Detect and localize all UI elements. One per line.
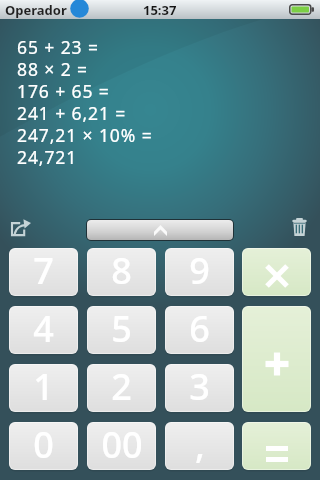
button[interactable]: 00: [87, 422, 156, 470]
button[interactable]: Equals: [242, 422, 311, 470]
staticText: 24,721: [17, 145, 78, 167]
staticText: 4: [33, 306, 54, 352]
staticText: 8: [111, 248, 132, 294]
button[interactable]: 8: [87, 248, 156, 296]
staticText: 247,21 × 10% =: [17, 123, 153, 145]
staticText: 15:37: [143, 1, 177, 19]
staticText: 00: [101, 422, 143, 468]
button[interactable]: ,: [165, 422, 234, 470]
staticText: Operador: [5, 1, 67, 19]
staticText: 1: [33, 364, 54, 410]
staticText: 0: [33, 422, 54, 468]
button[interactable]: Multiply: [242, 248, 311, 296]
button[interactable]: 5: [87, 306, 156, 354]
button[interactable]: 7: [9, 248, 78, 296]
staticText: ,: [195, 422, 205, 468]
staticText: 65 + 23 =: [17, 35, 99, 57]
button[interactable]: Clear: [283, 213, 315, 241]
button[interactable]: 4: [9, 306, 78, 354]
button[interactable]: 3: [165, 364, 234, 412]
staticText: 6: [189, 306, 210, 352]
staticText: 2: [111, 364, 132, 410]
staticText: 9: [189, 248, 210, 294]
button[interactable]: Share: [4, 213, 38, 241]
button[interactable]: 0: [9, 422, 78, 470]
staticText: 176 + 65 =: [17, 79, 110, 101]
button[interactable]: Expand history: [87, 220, 233, 240]
staticText: 5: [111, 306, 132, 352]
button[interactable]: 6: [165, 306, 234, 354]
button[interactable]: 1: [9, 364, 78, 412]
button[interactable]: Add: [242, 306, 311, 412]
staticText: 3: [189, 364, 210, 410]
staticText: 88 × 2 =: [17, 57, 88, 79]
staticText: 241 + 6,21 =: [17, 101, 127, 123]
button[interactable]: 2: [87, 364, 156, 412]
button[interactable]: 9: [165, 248, 234, 296]
staticText: 7: [33, 248, 54, 294]
